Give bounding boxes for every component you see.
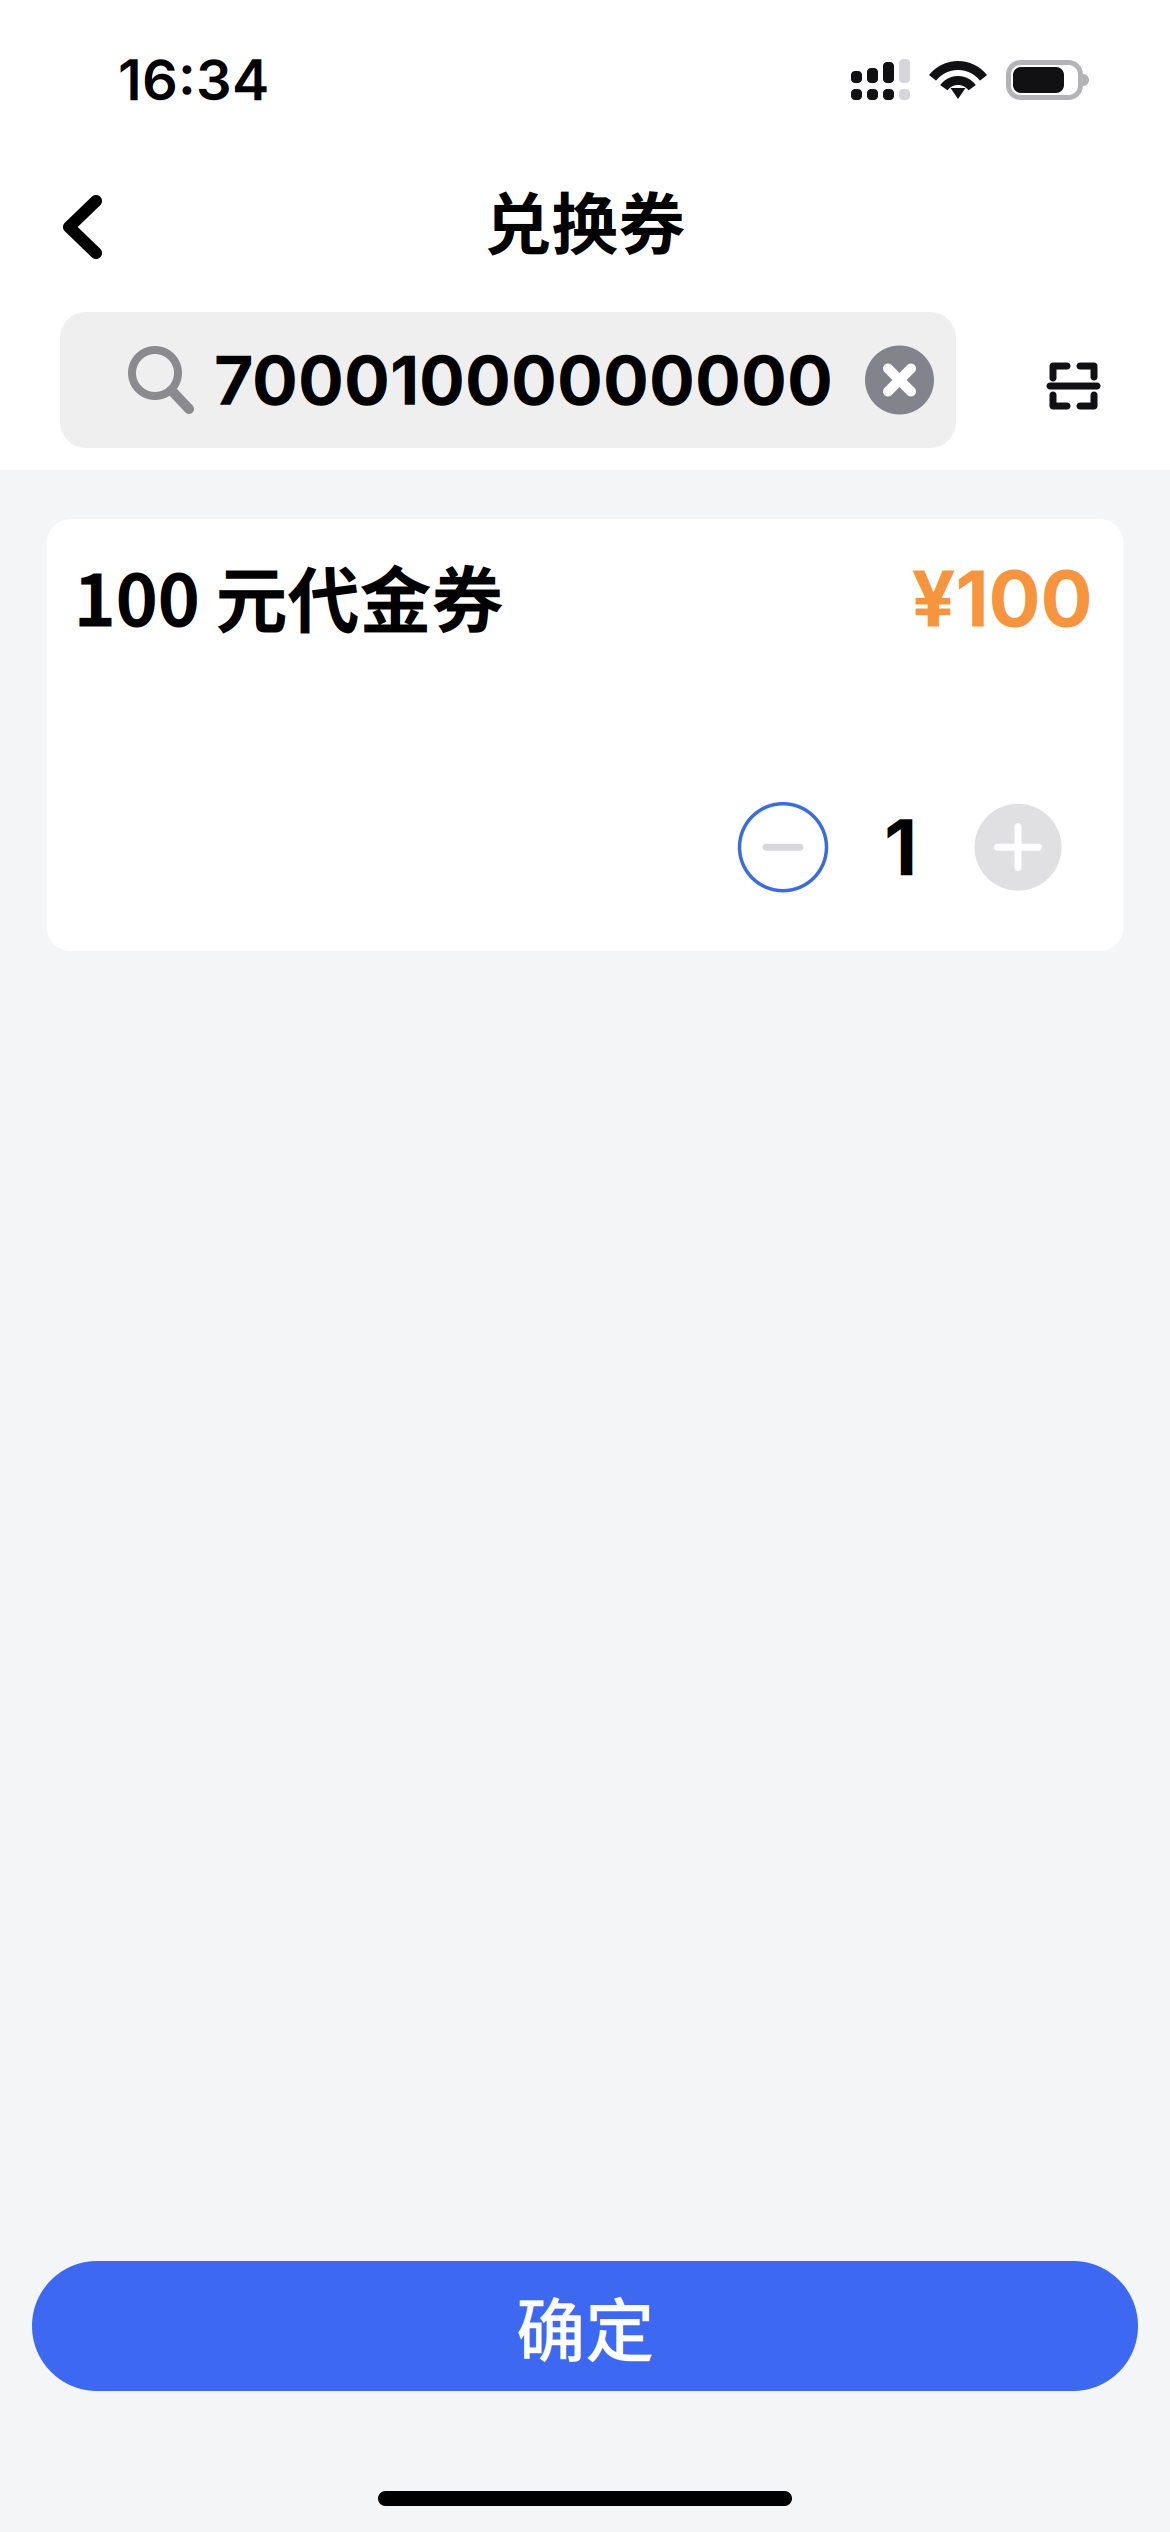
button[interactable]: 确定 — [32, 2261, 1138, 2391]
staticText: 1 — [884, 800, 917, 894]
staticText: 16:34 — [118, 46, 269, 114]
button[interactable]: Clear text — [865, 345, 934, 414]
staticText: 100 元代金券 — [73, 543, 503, 647]
staticText: ¥100 — [911, 552, 1092, 645]
staticText: 确定 — [516, 2276, 654, 2376]
staticText: 兑换券 — [484, 172, 685, 268]
staticText: 70001000000000 — [214, 339, 833, 421]
button[interactable]: 70001000000000 — [60, 312, 956, 448]
button[interactable]: Increase quantity — [974, 804, 1061, 891]
button[interactable]: Scan barcode — [1025, 312, 1132, 448]
button[interactable]: Back — [0, 170, 137, 280]
button[interactable]: Decrease quantity — [739, 804, 826, 891]
